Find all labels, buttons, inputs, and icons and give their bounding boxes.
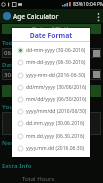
staticText: Date of Birth [2,61,41,69]
button[interactable]: yyyy-mm-dd (2016-06-30) [12,69,90,81]
button[interactable]: mm/dd/yyyy (06/30/2016) [12,93,90,105]
button[interactable]: dd-mm-yyyy (30-06-2016) [12,44,90,56]
button[interactable]: yyyy/mm/dd (2016/06/30) [12,105,90,117]
button[interactable]: mm-dd-yyyy (06-30-2016) [12,56,90,68]
staticText: yyyy.mm.dd (2016.06.30) [26,145,85,152]
button[interactable]: More options [93,9,103,23]
button[interactable]: mm.dd.yyyy (06.30.2016) [12,130,90,142]
staticText: Calculate [38,87,66,95]
staticText: yyyy-mm-dd (2016-06-30) [26,72,86,79]
button[interactable]: dd/mm/yyyy (30/06/2016) [12,81,90,93]
staticText: Your Age [2,103,29,111]
staticText: Extra Info [2,162,32,170]
button[interactable]: 06-30-2016 [2,48,101,58]
staticText: dd-mm-yyyy (30-06-2016) [26,47,86,54]
staticText: Date of Birth [32,25,71,33]
staticText: 83% [73,1,83,8]
staticText: 30-06-2016 [4,71,36,79]
staticText: Total Hours [22,175,55,183]
staticText: Today's Date [2,39,41,47]
staticText: 06-30-2016 [4,49,36,57]
button[interactable]: dd.mm.yyyy (30.06.2016) [12,117,90,129]
staticText: 10:04 PM [83,1,103,8]
staticText: Age Calculator [13,12,59,21]
button[interactable]: 30-06-2016 [2,69,101,80]
staticText: yyyy/mm/dd (2016/06/30) [26,108,87,115]
staticText: dd.mm.yyyy (30.06.2016) [26,120,85,127]
button[interactable]: Date of Birth [2,24,101,34]
staticText: dd/mm/yyyy (30/06/2016) [26,84,87,91]
staticText: mm-dd-yyyy (06-30-2016) [26,59,86,66]
staticText: mm/dd/yyyy (06/30/2016) [26,96,87,103]
staticText: mm.dd.yyyy (06.30.2016) [26,133,85,140]
staticText: Next Birthday [2,139,44,147]
button[interactable]: yyyy.mm.dd (2016.06.30) [12,142,90,154]
staticText: Date Format [12,31,90,40]
button[interactable]: Calculate [2,85,101,97]
button[interactable] [2,112,101,135]
